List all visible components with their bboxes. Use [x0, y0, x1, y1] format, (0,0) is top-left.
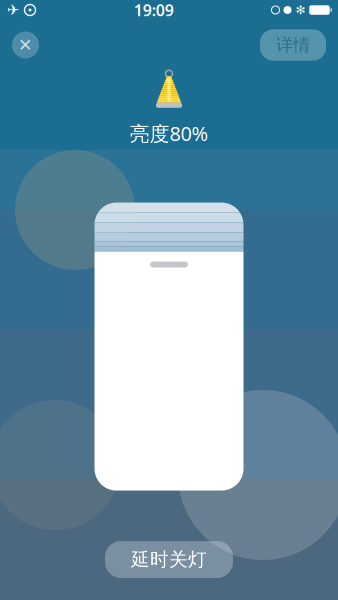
staticText: 19:09 [134, 0, 174, 21]
staticText: 详情 [276, 34, 310, 56]
staticText: ✕ [18, 35, 33, 55]
button[interactable]: 延时关灯 [105, 541, 233, 578]
button[interactable]: 详情 [260, 29, 326, 61]
staticText: 亮度80% [129, 120, 208, 147]
staticText: ✈ [7, 2, 19, 18]
button[interactable]: 关闭 [12, 31, 39, 58]
staticText: 延时关灯 [131, 548, 207, 571]
staticText: ✻ [295, 3, 305, 17]
